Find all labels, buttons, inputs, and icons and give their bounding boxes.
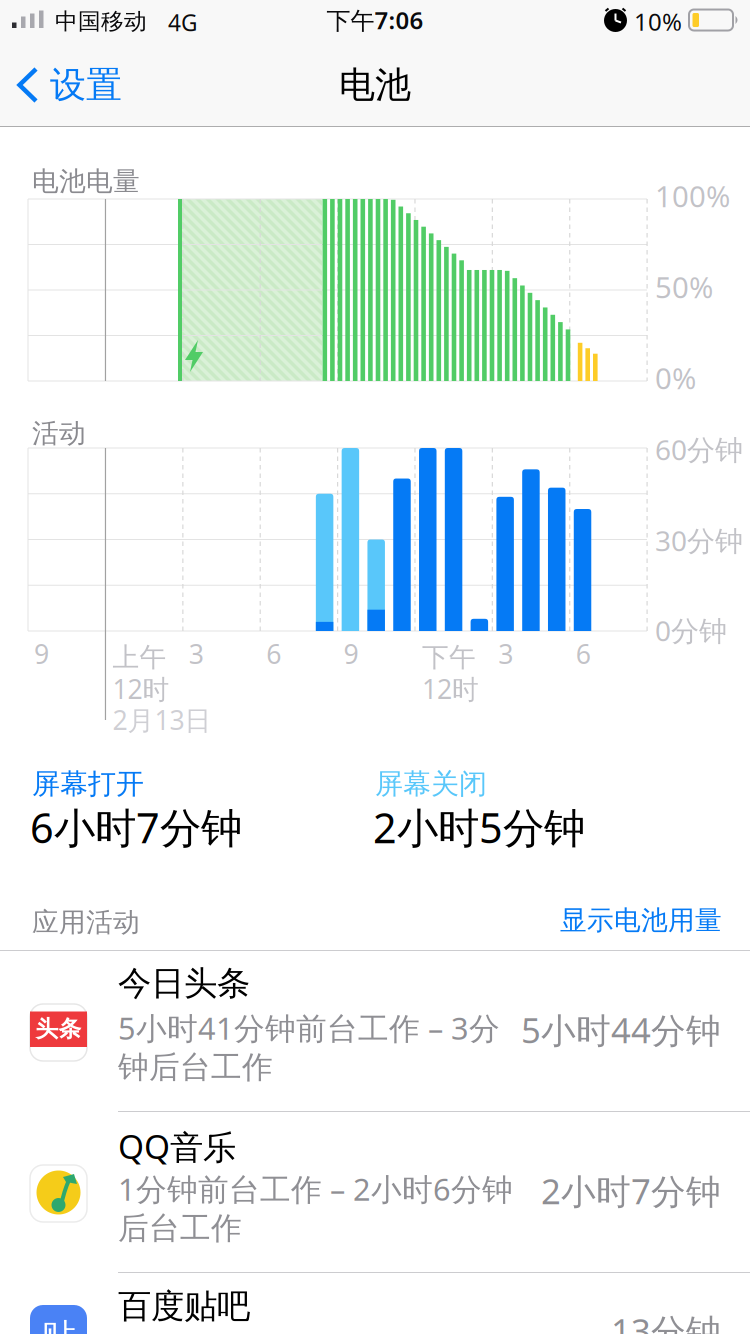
staticText: 1分钟前台工作 – 2小时6分钟: [118, 1168, 513, 1209]
staticText: 贴: [41, 1315, 76, 1334]
button[interactable]: 显示电池用量: [560, 904, 722, 937]
button[interactable]: 设置: [17, 62, 122, 108]
staticText: QQ音乐: [118, 1124, 236, 1168]
staticText: 5小时41分钟前台工作 – 3分: [118, 1007, 500, 1048]
staticText: 应用活动: [32, 906, 140, 939]
staticText: 下午7:06: [326, 4, 423, 36]
staticText: 上午: [112, 641, 166, 674]
staticText: 2月13日: [112, 702, 211, 737]
staticText: 9: [34, 636, 49, 671]
staticText: 5小时44分钟: [521, 1007, 721, 1053]
staticText: 中国移动: [55, 7, 147, 35]
staticText: 头条: [35, 1015, 81, 1043]
staticText: 3: [498, 636, 513, 671]
staticText: 3: [189, 636, 204, 671]
staticText: 4G: [168, 7, 198, 38]
staticText: 6: [576, 636, 591, 671]
button[interactable]: 贴: [0, 1272, 750, 1334]
staticText: 钟后台工作: [118, 1048, 273, 1086]
staticText: 6: [266, 636, 281, 671]
staticText: 12时: [422, 671, 479, 706]
staticText: 30分钟: [655, 522, 743, 559]
staticText: 屏幕关闭: [375, 767, 487, 801]
button[interactable]: QQ音乐: [0, 1112, 750, 1272]
staticText: 后台工作: [118, 1209, 242, 1247]
staticText: 9: [343, 636, 358, 671]
staticText: 电池: [339, 63, 411, 107]
staticText: 0分钟: [655, 612, 727, 649]
staticText: 50%: [655, 267, 713, 306]
staticText: 2小时7分钟: [541, 1168, 721, 1214]
staticText: 下午: [422, 641, 476, 674]
staticText: 今日头条: [118, 963, 250, 1004]
staticText: 100%: [655, 176, 730, 215]
staticText: 12时: [112, 671, 169, 706]
button[interactable]: 头条: [0, 951, 750, 1111]
staticText: 60分钟: [655, 431, 743, 468]
staticText: 百度贴吧: [118, 1286, 250, 1327]
staticText: 设置: [50, 63, 122, 107]
staticText: 活动: [32, 417, 86, 450]
staticText: 13分钟: [611, 1308, 721, 1334]
staticText: 6小时7分钟: [30, 800, 242, 855]
staticText: 10%: [634, 5, 682, 37]
staticText: 2小时5分钟: [373, 800, 585, 855]
staticText: 显示电池用量: [560, 904, 722, 937]
staticText: 电池电量: [32, 165, 140, 198]
staticText: 0%: [655, 358, 696, 397]
staticText: 屏幕打开: [32, 767, 144, 801]
